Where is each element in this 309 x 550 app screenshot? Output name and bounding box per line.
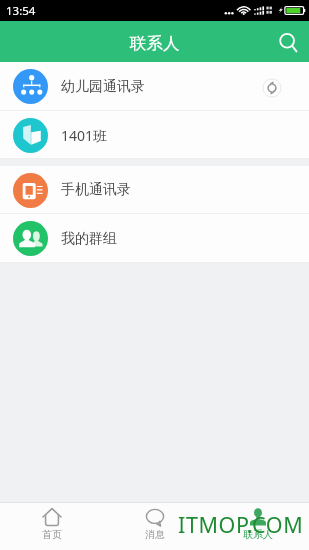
button[interactable]: 首页 bbox=[0, 503, 103, 550]
staticText: 联系人 bbox=[130, 33, 180, 54]
button[interactable]: 手机通讯录 bbox=[0, 166, 309, 214]
staticText: ITMOP.COM bbox=[178, 510, 304, 539]
button[interactable]: Search bbox=[267, 21, 309, 62]
staticText: 13:54 bbox=[6, 3, 36, 19]
button[interactable]: 联系人 bbox=[206, 503, 309, 550]
staticText: 联系人 bbox=[243, 528, 273, 541]
staticText: 首页 bbox=[42, 528, 62, 541]
button[interactable]: 我的群组 bbox=[0, 214, 309, 263]
staticText: 消息 bbox=[145, 528, 165, 541]
button[interactable]: Refresh bbox=[261, 77, 283, 99]
button[interactable]: 消息 bbox=[103, 503, 206, 550]
button[interactable]: 幼儿园通讯录 bbox=[0, 62, 309, 111]
staticText: 我的群组 bbox=[61, 230, 117, 248]
staticText: 1401班 bbox=[61, 126, 108, 145]
staticText: 手机通讯录 bbox=[61, 181, 131, 199]
button[interactable]: 1401班 bbox=[0, 111, 309, 159]
staticText: 幼儿园通讯录 bbox=[61, 78, 145, 96]
